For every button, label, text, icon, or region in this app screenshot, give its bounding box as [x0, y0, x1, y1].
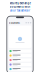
staticText: Documents	[9, 21, 20, 24]
staticText: your tax advisor	[10, 9, 30, 12]
button[interactable]	[9, 58, 31, 62]
staticText: documents with	[9, 5, 30, 9]
button[interactable]	[9, 67, 31, 71]
button[interactable]	[9, 63, 31, 66]
staticText: Securely exchange	[9, 1, 30, 5]
button[interactable]	[9, 54, 31, 57]
button[interactable]	[9, 49, 31, 53]
